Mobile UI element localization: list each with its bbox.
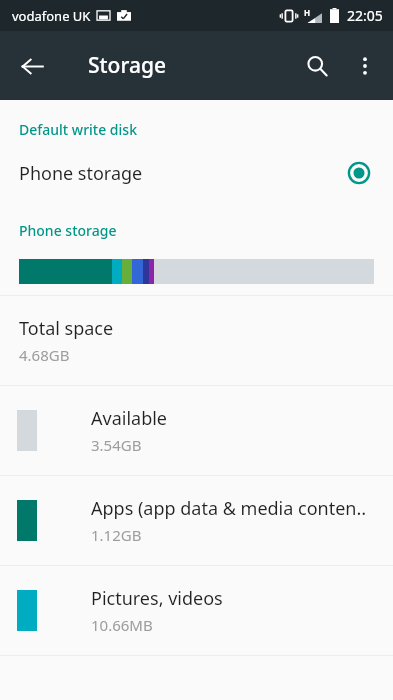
staticText: H (304, 7, 311, 18)
staticText: Phone storage (19, 221, 117, 240)
staticText: vodafone UK (12, 7, 91, 25)
staticText: 4.68GB (19, 345, 70, 365)
button[interactable]: Search (293, 42, 341, 90)
button[interactable]: Phone storage (0, 153, 393, 193)
button[interactable]: More options (341, 42, 389, 90)
staticText: 10.66MB (91, 615, 153, 635)
button[interactable]: Total space (0, 296, 393, 385)
staticText: Pictures, videos (91, 586, 223, 611)
staticText: Apps (app data & media conten‥ (91, 496, 367, 521)
button[interactable]: Apps (app data & media conten‥ (0, 476, 393, 565)
staticText: Phone storage (19, 161, 143, 186)
button[interactable]: Back (8, 42, 56, 90)
staticText: Storage (88, 51, 166, 80)
staticText: 3.54GB (91, 435, 142, 455)
button[interactable]: Pictures, videos (0, 566, 393, 655)
staticText: 1.12GB (91, 525, 142, 545)
staticText: Available (91, 406, 167, 431)
staticText: 22:05 (347, 6, 383, 25)
button[interactable]: Available (0, 386, 393, 475)
staticText: Total space (19, 316, 114, 341)
staticText: Default write disk (19, 120, 137, 139)
